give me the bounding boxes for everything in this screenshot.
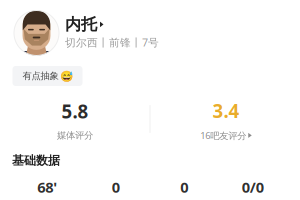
staticText: 5.8 <box>61 99 88 124</box>
staticText: 0/0 <box>242 177 264 197</box>
staticText: 68' <box>37 177 57 197</box>
staticText: 切尔西丨前锋丨7号 <box>65 35 159 49</box>
staticText: 16吧友评分 <box>200 129 246 142</box>
button[interactable]: 3.4 <box>200 98 252 142</box>
staticText: 3.4 <box>212 98 239 123</box>
button[interactable]: 内托 <box>13 9 159 54</box>
staticText: 😅 <box>59 70 72 82</box>
staticText: 基础数据 <box>12 153 60 168</box>
staticText: 有点抽象 <box>22 70 58 82</box>
staticText: 媒体评分 <box>57 130 93 141</box>
staticText: 0 <box>112 177 120 197</box>
staticText: 0 <box>180 177 188 197</box>
staticText: 内托 <box>65 15 97 34</box>
button[interactable]: 有点抽象 <box>12 66 82 86</box>
